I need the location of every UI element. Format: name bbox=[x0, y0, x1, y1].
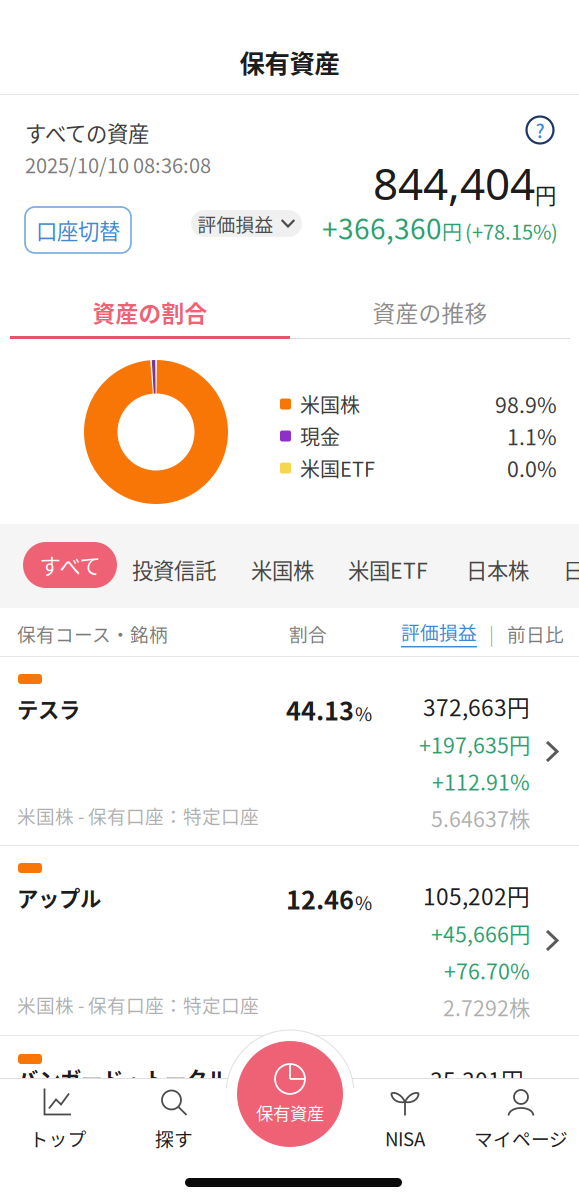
staticText: 98.9% bbox=[495, 389, 557, 419]
staticText: 投資信託 bbox=[132, 554, 216, 585]
button[interactable]: 前日比 bbox=[507, 620, 564, 647]
staticText: テスラ bbox=[17, 693, 80, 724]
staticText: 2025/10/10 08:36:08 bbox=[25, 150, 211, 179]
staticText: +76.70% bbox=[444, 955, 530, 986]
staticText: 12.46 bbox=[286, 880, 354, 917]
staticText: +112.91% bbox=[432, 766, 530, 797]
staticText: 日 bbox=[563, 554, 579, 585]
staticText: 米国株 bbox=[251, 554, 314, 585]
button[interactable]: 米国株 bbox=[251, 554, 314, 585]
staticText: NISA bbox=[385, 1124, 425, 1151]
button[interactable]: 保有資産 bbox=[237, 1041, 343, 1147]
staticText: 割合 bbox=[289, 620, 327, 647]
button[interactable]: トップ bbox=[0, 1083, 116, 1157]
staticText: ? bbox=[535, 116, 544, 143]
staticText: +197,635円 bbox=[419, 729, 530, 760]
button[interactable]: 資産の割合 bbox=[10, 294, 290, 330]
staticText: 372,663円 bbox=[423, 690, 530, 723]
button[interactable]: 探す bbox=[116, 1083, 232, 1157]
staticText: 現金 bbox=[300, 421, 340, 450]
button[interactable]: 日本株 bbox=[466, 554, 529, 585]
staticText: アップル bbox=[17, 882, 101, 913]
staticText: % bbox=[355, 889, 372, 916]
staticText: 844,404 bbox=[373, 153, 535, 213]
staticText: 日本株 bbox=[466, 554, 529, 585]
button[interactable]: 評価損益 bbox=[191, 210, 302, 237]
staticText: 2.7292株 bbox=[443, 992, 530, 1022]
button[interactable]: 評価損益 bbox=[401, 618, 477, 647]
staticText: 5.64637株 bbox=[431, 803, 530, 833]
button[interactable]: NISA bbox=[347, 1083, 463, 1157]
staticText: 資産の推移 bbox=[372, 296, 487, 328]
staticText: % bbox=[355, 700, 372, 727]
staticText: 35,301円 bbox=[430, 1063, 524, 1096]
staticText: 米国ETF bbox=[300, 453, 375, 482]
staticText: 口座切替 bbox=[36, 215, 120, 245]
staticText: 米国株 bbox=[300, 389, 360, 418]
staticText: | bbox=[489, 620, 494, 647]
staticText: +366,360 bbox=[322, 207, 442, 247]
button[interactable]: アップル bbox=[0, 846, 579, 1035]
staticText: 1.1% bbox=[507, 421, 557, 451]
staticText: 評価損益 bbox=[401, 618, 477, 645]
staticText: マイページ bbox=[474, 1124, 568, 1151]
staticText: 円 bbox=[535, 179, 556, 210]
staticText: 保有コース・銘柄 bbox=[17, 620, 168, 647]
button[interactable]: 投資信託 bbox=[132, 554, 216, 585]
staticText: +45,666円 bbox=[431, 918, 530, 949]
button[interactable]: マイページ bbox=[463, 1083, 579, 1157]
staticText: すべて bbox=[39, 550, 100, 580]
staticText: 前日比 bbox=[507, 620, 564, 647]
button[interactable]: テスラ bbox=[0, 657, 579, 846]
staticText: (+78.15%) bbox=[465, 217, 558, 246]
staticText: すべての資産 bbox=[25, 117, 149, 148]
staticText: 44.13 bbox=[286, 691, 354, 728]
button[interactable]: 口座切替 bbox=[25, 207, 131, 253]
staticText: 米国株 - 保有口座：特定口座 bbox=[17, 802, 259, 829]
button[interactable]: すべて bbox=[23, 542, 117, 588]
staticText: 円 bbox=[442, 217, 462, 246]
button[interactable]: 資産の推移 bbox=[290, 294, 570, 330]
button[interactable]: ヘルプ bbox=[525, 115, 555, 145]
staticText: 保有資産 bbox=[256, 1100, 324, 1125]
staticText: トップ bbox=[29, 1124, 86, 1151]
button[interactable]: 米国ETF bbox=[348, 554, 428, 585]
staticText: 保有資産 bbox=[239, 44, 339, 80]
staticText: 資産の割合 bbox=[92, 296, 207, 328]
staticText: 探す bbox=[155, 1124, 193, 1151]
staticText: バンガード・トータル bbox=[17, 1063, 228, 1094]
staticText: 米国ETF bbox=[348, 554, 428, 585]
staticText: 105,202円 bbox=[423, 879, 530, 912]
staticText: 0.0% bbox=[507, 453, 557, 483]
staticText: 評価損益 bbox=[197, 210, 273, 237]
staticText: 米国株 - 保有口座：特定口座 bbox=[17, 991, 259, 1018]
